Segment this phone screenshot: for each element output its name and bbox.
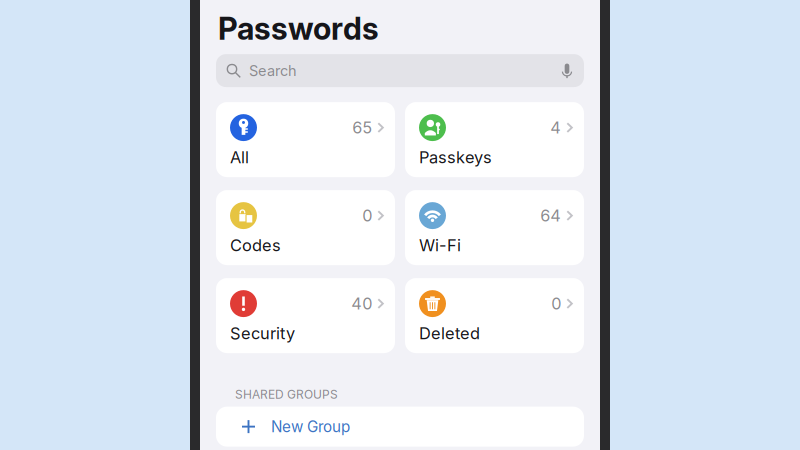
staticText: All bbox=[230, 147, 249, 167]
staticText: New Group bbox=[271, 417, 350, 436]
button[interactable]: New Group bbox=[216, 407, 584, 447]
staticText: 4 bbox=[550, 118, 561, 137]
button[interactable]: 4 bbox=[405, 102, 584, 177]
staticText: 65 bbox=[352, 118, 372, 137]
staticText: Search bbox=[249, 62, 297, 79]
button[interactable]: 65 bbox=[216, 102, 395, 177]
staticText: 64 bbox=[540, 206, 561, 225]
staticText: Passkeys bbox=[419, 147, 492, 167]
staticText: Passwords bbox=[218, 10, 379, 47]
staticText: 40 bbox=[351, 294, 372, 313]
staticText: SHARED GROUPS bbox=[235, 387, 338, 402]
staticText: 0 bbox=[551, 294, 561, 313]
button[interactable]: 40 bbox=[216, 278, 395, 353]
button[interactable]: 64 bbox=[405, 190, 584, 265]
button[interactable]: 0 bbox=[405, 278, 584, 353]
staticText: Security bbox=[230, 323, 295, 343]
staticText: 0 bbox=[362, 206, 372, 225]
staticText: Deleted bbox=[419, 323, 480, 343]
button[interactable]: 0 bbox=[216, 190, 395, 265]
staticText: Codes bbox=[230, 235, 281, 255]
staticText: Wi-Fi bbox=[419, 235, 461, 255]
